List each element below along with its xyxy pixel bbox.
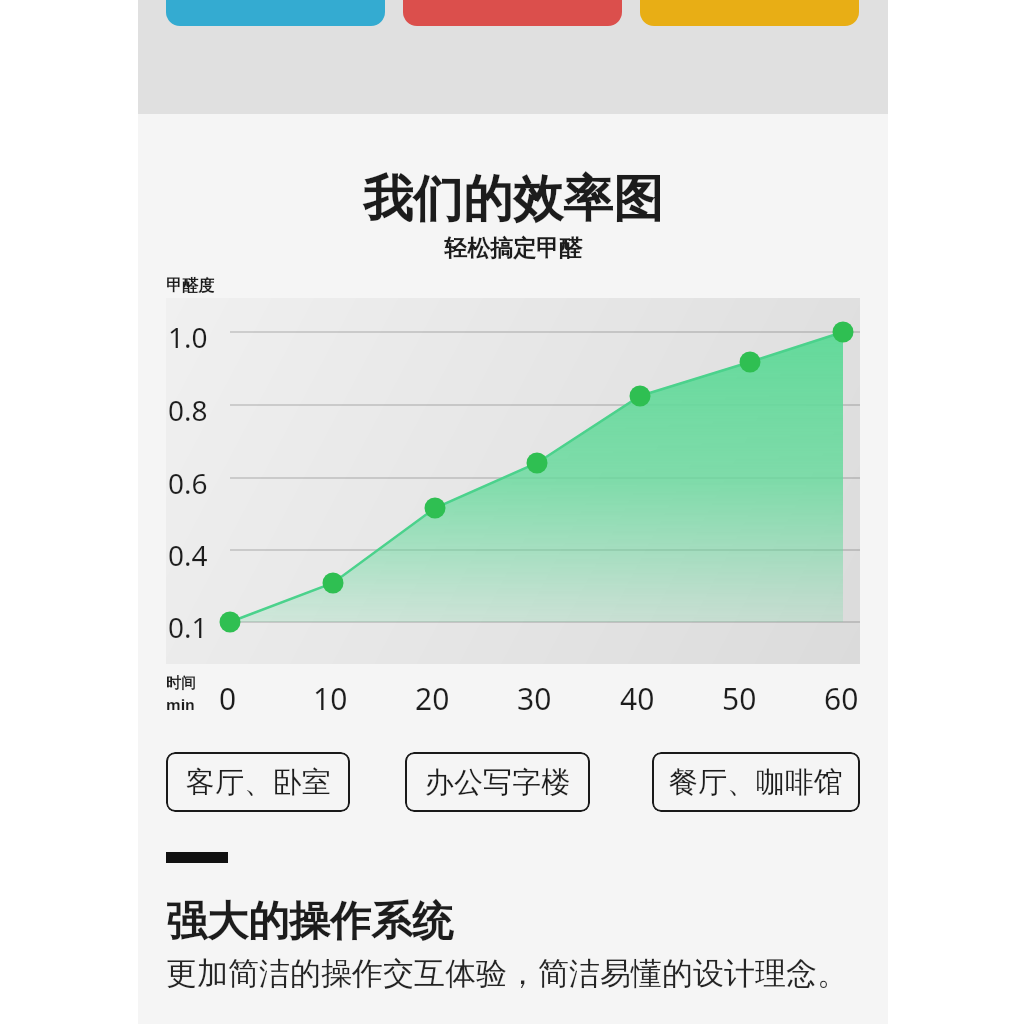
button[interactable]: Yellow card [640, 0, 859, 26]
staticText: 时间 [166, 674, 196, 693]
staticText: 1.0 [168, 318, 208, 356]
staticText: 0.6 [168, 464, 208, 502]
button[interactable]: 客厅、卧室 [166, 752, 350, 812]
staticText: 甲醛度 [166, 276, 214, 296]
staticText: 40 [620, 678, 655, 719]
staticText: 餐厅、咖啡馆 [669, 764, 843, 801]
staticText: 0.4 [168, 536, 208, 574]
staticText: 我们的效率图 [363, 168, 663, 231]
staticText: 20 [415, 678, 450, 719]
staticText: 办公写字楼 [425, 764, 570, 801]
staticText: 更加简洁的操作交互体验，简洁易懂的设计理念。 [166, 954, 848, 993]
staticText: 客厅、卧室 [186, 764, 331, 801]
button[interactable]: 餐厅、咖啡馆 [652, 752, 860, 812]
staticText: 10 [313, 678, 348, 719]
staticText: 30 [517, 678, 552, 719]
staticText: 轻松搞定甲醛 [444, 234, 582, 263]
staticText: 0.1 [168, 608, 208, 646]
staticText: min [166, 694, 195, 714]
button[interactable]: 办公写字楼 [405, 752, 590, 812]
button[interactable]: Red card [403, 0, 622, 26]
button[interactable]: Blue card [166, 0, 385, 26]
staticText: 60 [824, 678, 859, 719]
staticText: 0.8 [168, 391, 208, 429]
staticText: 强大的操作系统 [166, 896, 453, 948]
staticText: 0 [219, 678, 237, 719]
staticText: 50 [722, 678, 757, 719]
